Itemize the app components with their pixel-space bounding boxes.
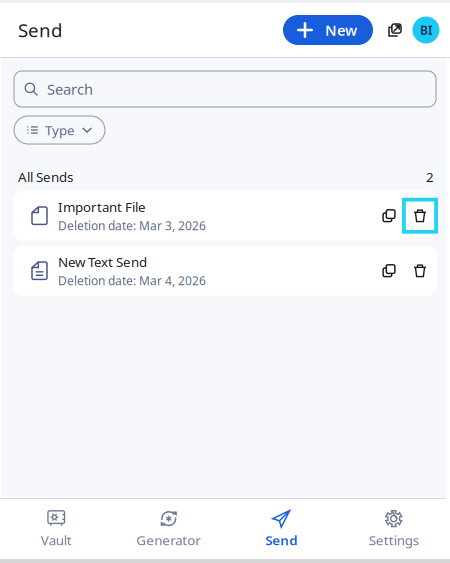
button[interactable]: Account [411, 15, 441, 45]
staticText: Important File [58, 198, 146, 216]
staticText: Send [18, 18, 62, 42]
button[interactable]: Vault [0, 499, 112, 559]
button[interactable]: Send [225, 499, 337, 559]
button[interactable]: New Text Send [13, 246, 437, 296]
staticText: New Text Send [58, 253, 147, 271]
staticText: Search [47, 79, 93, 99]
button[interactable]: Delete [402, 198, 438, 234]
button[interactable]: Important File [13, 191, 437, 241]
button[interactable]: New [283, 15, 373, 45]
staticText: Deletion date: Mar 3, 2026 [58, 218, 206, 233]
button[interactable]: Copy link [376, 256, 402, 286]
staticText: Settings [369, 531, 419, 549]
button[interactable]: Settings [337, 499, 450, 559]
button[interactable]: Type [14, 116, 105, 144]
staticText: New [325, 20, 357, 40]
staticText: BI [420, 22, 432, 38]
button[interactable]: Generator [112, 499, 225, 559]
staticText: 2 [426, 168, 434, 186]
button[interactable]: Delete [402, 253, 438, 289]
staticText: All Sends [18, 168, 73, 186]
staticText: Send [265, 531, 297, 549]
button[interactable]: Open in new window [379, 14, 411, 46]
staticText: Type [45, 121, 75, 139]
button[interactable]: Copy link [376, 201, 402, 231]
staticText: Vault [41, 531, 72, 549]
staticText: Deletion date: Mar 4, 2026 [58, 273, 206, 288]
staticText: Generator [136, 531, 201, 549]
